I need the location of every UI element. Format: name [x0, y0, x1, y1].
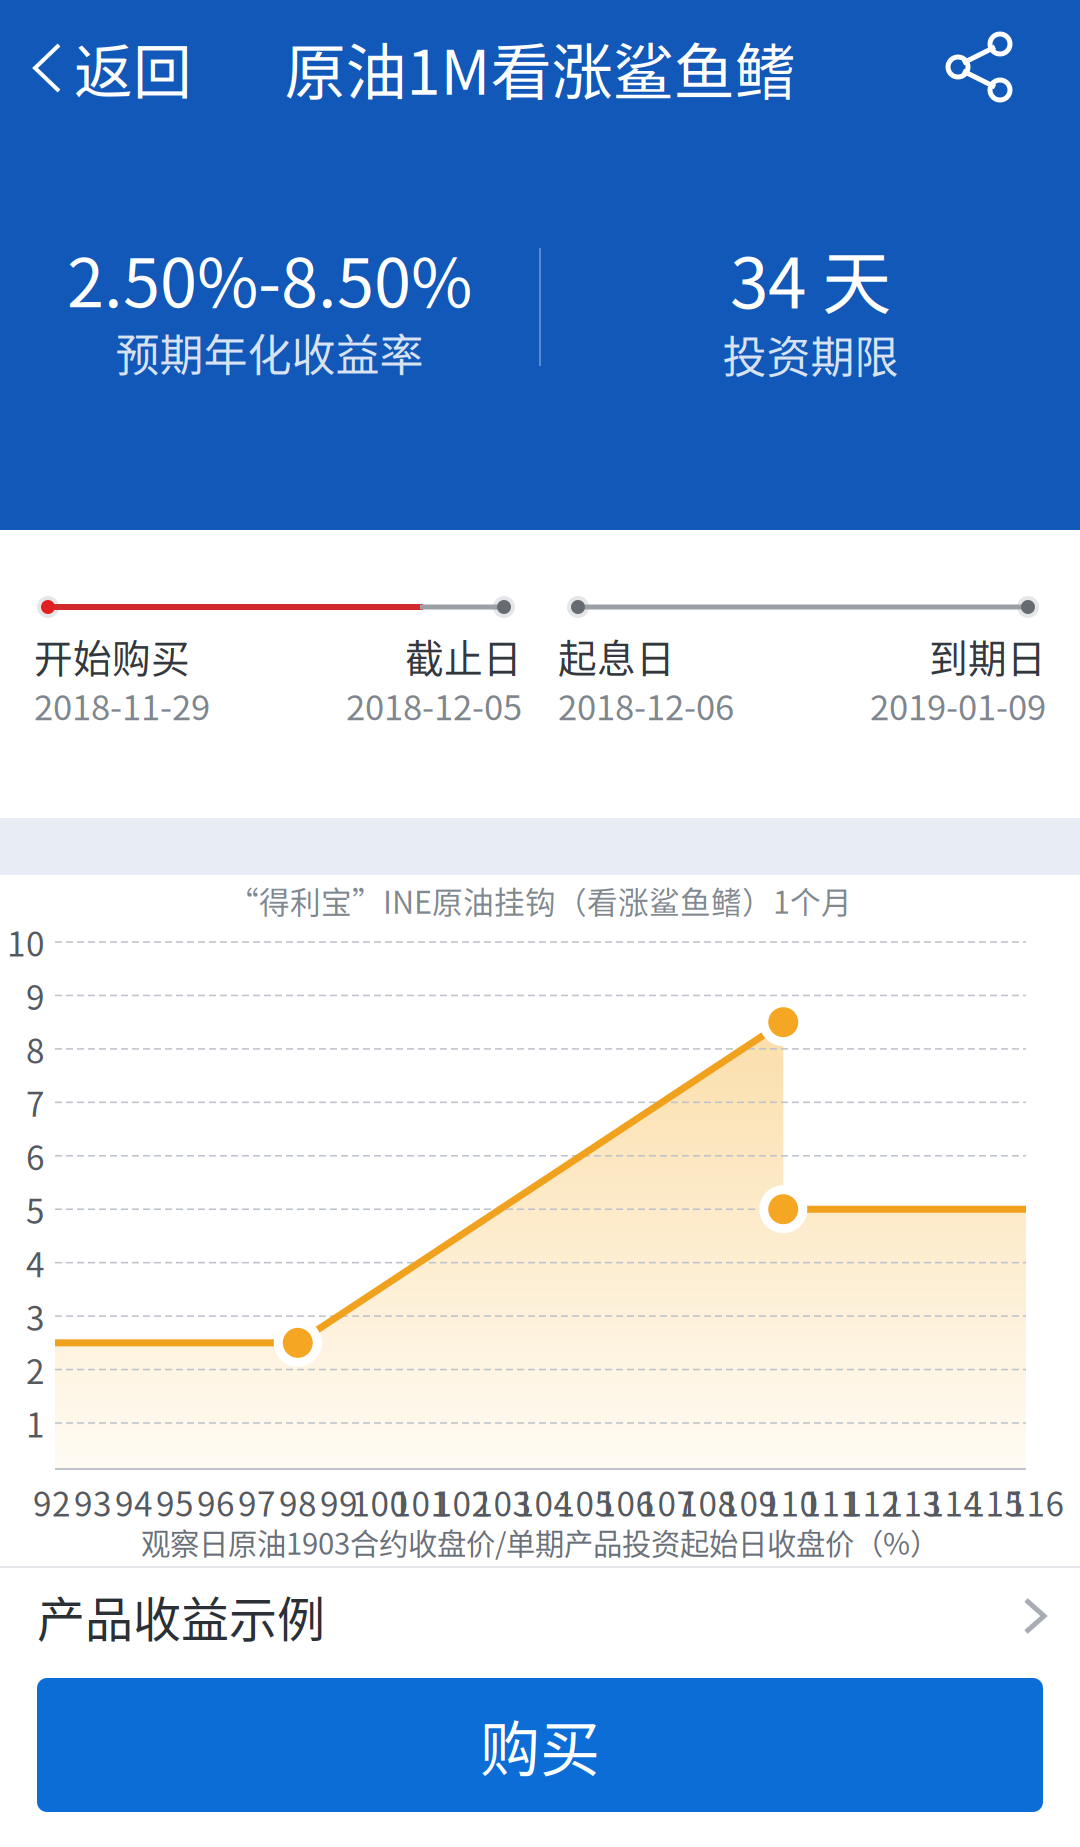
- staticText: 2: [26, 1345, 45, 1394]
- staticText: 7: [26, 1078, 45, 1126]
- staticText: 预期年化收益率: [115, 320, 423, 384]
- staticText: 112: [843, 1478, 900, 1526]
- staticText: 106: [597, 1478, 654, 1526]
- staticText: 返回: [74, 25, 192, 110]
- staticText: 100: [351, 1478, 408, 1526]
- button[interactable]: 购买: [37, 1678, 1043, 1812]
- staticText: 107: [638, 1478, 695, 1526]
- staticText: 2018-12-05: [346, 680, 522, 730]
- staticText: 2.50%-8.50%: [67, 230, 472, 326]
- staticText: 10: [7, 918, 45, 966]
- staticText: 2018-11-29: [34, 680, 210, 730]
- button[interactable]: 产品收益示例: [0, 1568, 1080, 1664]
- staticText: 95: [156, 1478, 194, 1526]
- staticText: 34 天: [730, 228, 891, 328]
- staticText: 投资期限: [722, 322, 898, 386]
- staticText: 104: [515, 1478, 572, 1526]
- staticText: 1: [26, 1399, 45, 1447]
- staticText: 108: [679, 1478, 736, 1526]
- staticText: 109: [720, 1478, 777, 1526]
- staticText: 产品收益示例: [37, 1581, 325, 1651]
- staticText: 97: [238, 1478, 276, 1526]
- staticText: 96: [197, 1478, 235, 1526]
- staticText: 8: [26, 1025, 45, 1073]
- staticText: 94: [115, 1478, 153, 1526]
- staticText: 116: [1007, 1478, 1064, 1526]
- staticText: 111: [802, 1478, 859, 1526]
- staticText: 原油1M看涨鲨鱼鳍: [284, 24, 795, 112]
- staticText: 102: [433, 1478, 490, 1526]
- staticText: 开始购买: [34, 628, 190, 684]
- staticText: 101: [392, 1478, 449, 1526]
- staticText: 观察日原油1903合约收盘价/单期产品投资起始日收盘价（%）: [141, 1521, 939, 1563]
- staticText: 110: [761, 1478, 818, 1526]
- staticText: 2018-12-06: [558, 680, 734, 730]
- staticText: 114: [925, 1478, 982, 1526]
- staticText: 起息日: [558, 628, 675, 684]
- staticText: 2019-01-09: [870, 680, 1046, 730]
- staticText: 115: [966, 1478, 1023, 1526]
- staticText: 购买: [480, 1702, 600, 1788]
- staticText: 93: [74, 1478, 112, 1526]
- staticText: 105: [556, 1478, 613, 1526]
- staticText: 截止日: [405, 628, 522, 684]
- staticText: 4: [26, 1238, 45, 1287]
- staticText: 99: [320, 1478, 358, 1526]
- staticText: “得利宝”INE原油挂钩（看涨鲨鱼鳍）1个月: [228, 878, 852, 923]
- staticText: 92: [33, 1478, 71, 1526]
- staticText: 到期日: [929, 628, 1046, 684]
- staticText: 103: [474, 1478, 531, 1526]
- button[interactable]: Share: [946, 0, 1080, 136]
- staticText: 5: [26, 1185, 45, 1233]
- button[interactable]: 返回: [0, 0, 216, 136]
- staticText: 3: [26, 1292, 45, 1340]
- staticText: 9: [26, 971, 45, 1020]
- staticText: 113: [884, 1478, 941, 1526]
- staticText: 98: [279, 1478, 317, 1526]
- staticText: 6: [26, 1132, 45, 1180]
